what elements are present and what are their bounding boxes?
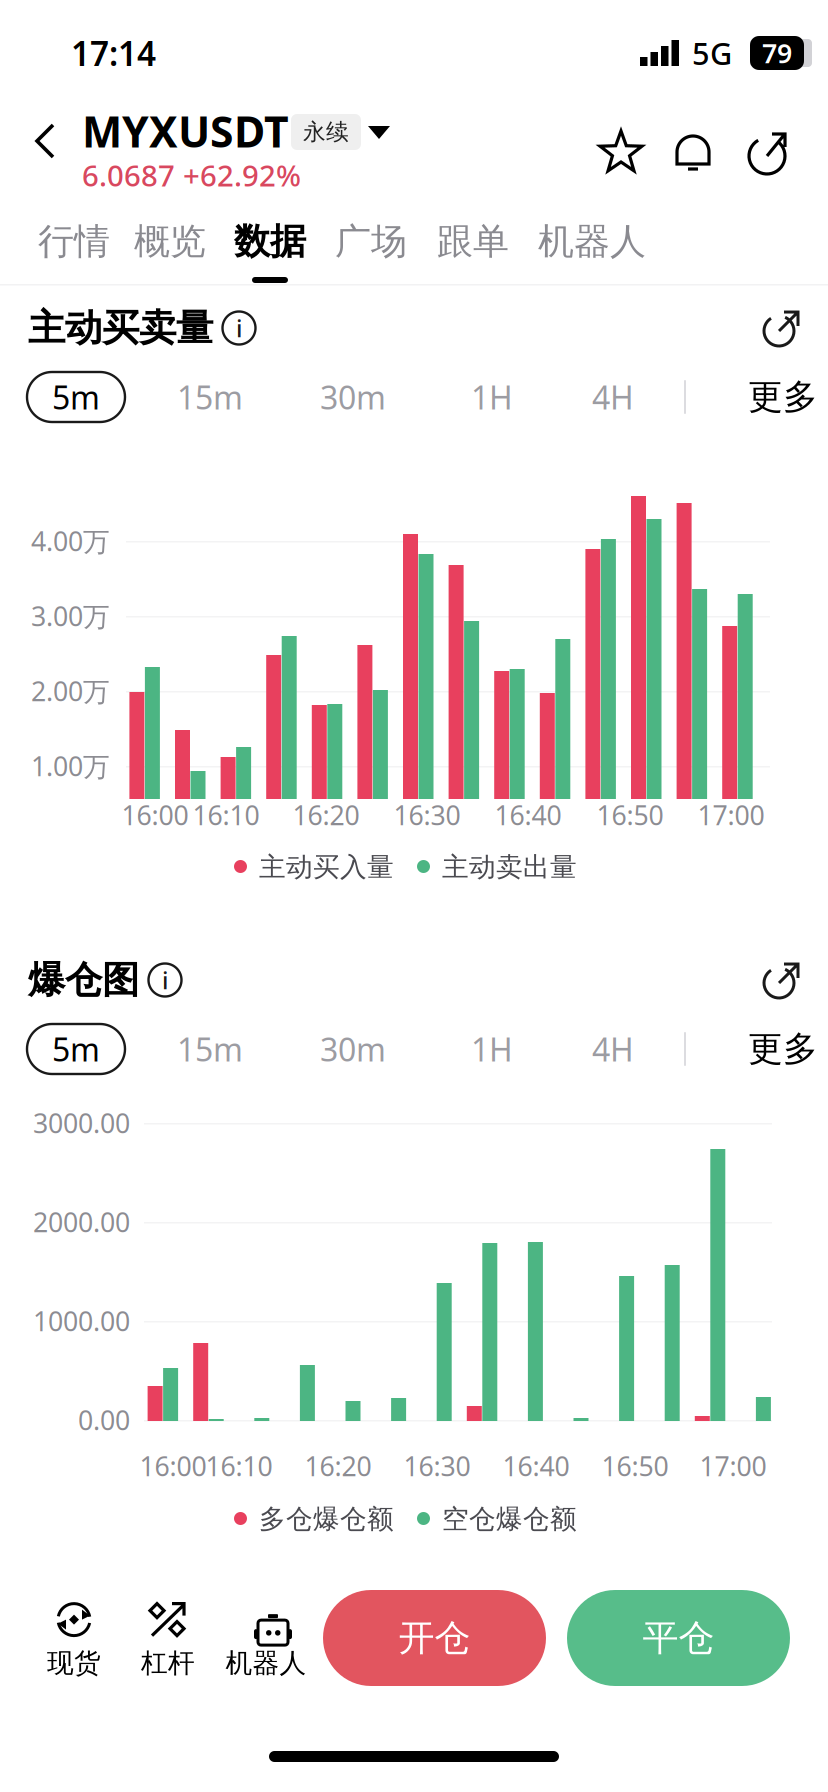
button[interactable]: 5m: [27, 372, 125, 422]
staticText: 4.00万: [31, 523, 110, 559]
button[interactable]: 数据: [212, 206, 328, 286]
button[interactable]: 更多: [748, 372, 828, 422]
staticText: 16:30: [403, 1448, 470, 1484]
staticText: 1H: [471, 1028, 513, 1070]
staticText: i: [236, 312, 242, 344]
staticText: 广场: [335, 219, 407, 264]
staticText: 更多: [748, 376, 818, 418]
staticText: 16:40: [502, 1448, 569, 1484]
staticText: 30m: [320, 1028, 386, 1070]
staticText: 17:14: [71, 31, 156, 75]
staticText: 16:50: [596, 797, 663, 833]
button[interactable]: 概览: [112, 206, 228, 286]
staticText: 0.00: [78, 1402, 130, 1438]
button[interactable]: Price alert: [668, 127, 718, 177]
staticText: 空仓爆仓额: [442, 1503, 577, 1535]
staticText: 永续: [303, 118, 349, 146]
staticText: 1H: [471, 376, 513, 418]
staticText: 17:00: [697, 797, 764, 833]
staticText: 开仓: [398, 1616, 470, 1660]
staticText: 16:10: [205, 1448, 272, 1484]
button[interactable]: Share: [742, 127, 792, 177]
staticText: 5m: [52, 1028, 100, 1070]
staticText: MYXUSDT: [82, 103, 289, 159]
staticText: 16:20: [304, 1448, 371, 1484]
staticText: 5G: [692, 33, 732, 73]
staticText: 主动卖出量: [442, 851, 577, 883]
staticText: 1.00万: [31, 748, 110, 784]
staticText: 16:30: [393, 797, 460, 833]
staticText: 多仓爆仓额: [259, 1503, 394, 1535]
staticText: 6.0687 +62.92%: [82, 155, 301, 194]
button[interactable]: 机器人: [214, 1596, 318, 1682]
button[interactable]: Back: [20, 113, 76, 169]
staticText: 79: [762, 35, 792, 71]
staticText: 主动买卖量: [28, 305, 213, 351]
staticText: 1000.00: [33, 1303, 130, 1339]
staticText: 15m: [177, 376, 243, 418]
staticText: 机器人: [225, 1647, 306, 1679]
staticText: 现货: [47, 1647, 101, 1679]
staticText: 数据: [234, 219, 306, 264]
button[interactable]: 30m: [303, 372, 403, 422]
button[interactable]: 杠杆: [128, 1596, 208, 1682]
staticText: 4H: [592, 376, 634, 418]
staticText: 2.00万: [31, 673, 110, 709]
staticText: 行情: [38, 219, 110, 264]
staticText: 16:40: [494, 797, 561, 833]
staticText: 3.00万: [31, 598, 110, 634]
staticText: 16:00: [139, 1448, 206, 1484]
button[interactable]: 15m: [160, 1024, 260, 1074]
staticText: 4H: [592, 1028, 634, 1070]
staticText: 杠杆: [141, 1647, 195, 1679]
staticText: 17:00: [699, 1448, 766, 1484]
button[interactable]: 现货: [34, 1596, 114, 1682]
button[interactable]: 行情: [16, 206, 132, 286]
staticText: 16:20: [292, 797, 359, 833]
staticText: 16:00: [121, 797, 188, 833]
staticText: 爆仓图: [28, 957, 139, 1003]
staticText: 16:50: [601, 1448, 668, 1484]
button[interactable]: 30m: [303, 1024, 403, 1074]
button[interactable]: 平仓: [567, 1590, 790, 1686]
staticText: 机器人: [538, 219, 646, 264]
staticText: 15m: [177, 1028, 243, 1070]
button[interactable]: Open 爆仓图 full screen: [758, 956, 804, 1002]
button[interactable]: 开仓: [323, 1590, 546, 1686]
button[interactable]: 1H: [452, 1024, 532, 1074]
button[interactable]: 5m: [27, 1024, 125, 1074]
staticText: 主动买入量: [259, 851, 394, 883]
staticText: 更多: [748, 1028, 818, 1070]
button[interactable]: 广场: [313, 206, 429, 286]
staticText: 5m: [52, 376, 100, 418]
button[interactable]: 更多: [748, 1024, 828, 1074]
button[interactable]: 4H: [573, 372, 653, 422]
staticText: 平仓: [642, 1616, 714, 1660]
staticText: 跟单: [437, 219, 509, 264]
button[interactable]: Favorite: [596, 127, 646, 177]
staticText: 16:10: [192, 797, 259, 833]
button[interactable]: 15m: [160, 372, 260, 422]
button[interactable]: 1H: [452, 372, 532, 422]
staticText: 3000.00: [33, 1105, 130, 1141]
staticText: 概览: [134, 219, 206, 264]
staticText: 30m: [320, 376, 386, 418]
staticText: 2000.00: [33, 1204, 130, 1240]
button[interactable]: 机器人: [534, 206, 650, 286]
staticText: i: [162, 964, 168, 996]
button[interactable]: 4H: [573, 1024, 653, 1074]
button[interactable]: Open 主动买卖量 full screen: [758, 304, 804, 350]
button[interactable]: 跟单: [415, 206, 531, 286]
